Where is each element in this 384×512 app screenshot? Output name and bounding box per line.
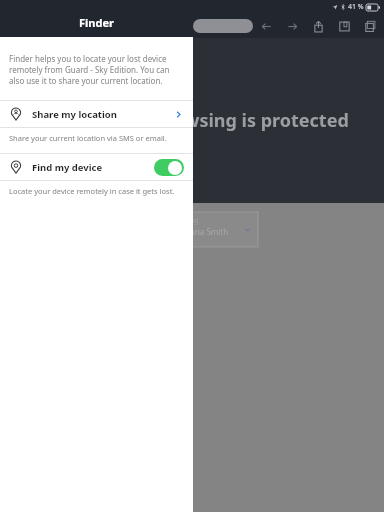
button[interactable]: Share bbox=[305, 14, 331, 38]
staticText: Find my device bbox=[32, 161, 103, 174]
staticText: aria Smith bbox=[190, 226, 229, 237]
button[interactable]: Subscription bbox=[146, 254, 202, 288]
staticText: Share your current location via SMS or e… bbox=[9, 133, 167, 143]
staticText: Subscription bbox=[155, 271, 194, 280]
staticText: ng bbox=[190, 216, 199, 226]
button[interactable]: Find my device toggle bbox=[154, 159, 184, 176]
button[interactable]: Back bbox=[253, 14, 279, 38]
button[interactable]: Forward bbox=[279, 14, 305, 38]
staticText: Finder helps you to locate your lost dev… bbox=[9, 53, 184, 86]
button[interactable]: Tabs bbox=[357, 14, 383, 38]
staticText: 41 % bbox=[348, 2, 364, 12]
staticText: Locate your device remotely in case it g… bbox=[9, 186, 175, 196]
staticText: Finder bbox=[79, 15, 114, 30]
staticText: Share my location bbox=[32, 108, 117, 121]
button[interactable]: Find my device bbox=[0, 154, 193, 180]
button[interactable]: ng bbox=[186, 212, 258, 247]
button[interactable] bbox=[193, 19, 253, 33]
button[interactable]: Share my location bbox=[0, 101, 193, 127]
button[interactable]: Bookmarks bbox=[331, 14, 357, 38]
staticText: Your browsing is protected bbox=[108, 108, 349, 133]
